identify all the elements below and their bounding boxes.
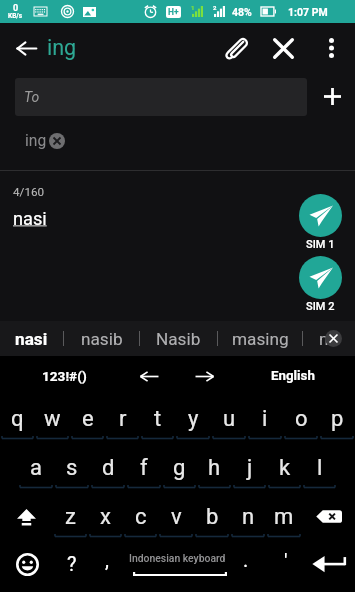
staticText: c [135,504,147,530]
button[interactable]: Remove recipient [49,133,65,149]
staticText: k [279,455,291,481]
button[interactable]: h [197,445,232,494]
staticText: ing [47,35,77,60]
button[interactable]: o [283,396,319,445]
staticText: s [66,455,78,481]
staticText: o [295,406,308,432]
button[interactable]: v [158,494,194,543]
staticText: mi [319,329,339,349]
staticText: nasi [15,329,48,349]
button[interactable]: e [70,396,105,445]
button[interactable]: More options [311,25,351,71]
button[interactable]: Enter [306,543,351,592]
staticText: h [208,455,221,481]
staticText: Indonesian keyboard [129,552,226,564]
staticText: d [102,455,115,481]
staticText: 0 [13,3,19,14]
staticText: nasi [13,208,47,229]
button[interactable]: u [211,396,247,445]
button[interactable]: i [247,396,283,445]
button[interactable]: z [53,494,88,543]
button[interactable]: mi [303,321,354,356]
button[interactable]: Emoji [6,543,49,592]
staticText: SIM 1 [306,238,335,251]
button[interactable]: English [257,356,329,396]
button[interactable]: Hide suggestions [325,330,342,347]
button[interactable]: y [175,396,211,445]
button[interactable]: s [54,445,90,494]
button[interactable]: j [232,445,267,494]
button[interactable]: , [88,543,125,592]
button[interactable]: n [230,494,266,543]
staticText: ' [284,549,288,572]
staticText: 1:07 PM [288,6,328,18]
staticText: w [44,406,61,432]
staticText: 48% [232,6,252,18]
button[interactable]: ? [53,543,90,592]
staticText: m [274,504,294,530]
button[interactable]: g [162,445,197,494]
button[interactable]: Shift [0,494,53,543]
staticText: l [317,455,323,481]
button[interactable]: r [105,396,140,445]
staticText: H+ [168,7,179,17]
button[interactable]: k [267,445,302,494]
staticText: To [24,89,40,105]
button[interactable]: Back [6,28,46,68]
button[interactable]: m [266,494,302,543]
staticText: Nasib [156,329,201,349]
staticText: nasib [81,329,123,349]
staticText: v [171,504,182,530]
staticText: a [30,455,42,481]
staticText: j [247,455,253,481]
button[interactable]: Add recipient [311,78,353,115]
button[interactable]: To [15,78,307,116]
button[interactable]: 123!#() [28,356,100,396]
button[interactable]: q [0,396,35,445]
staticText: 123!#() [42,368,87,384]
button[interactable]: Backspace [302,494,355,543]
staticText: English [271,368,315,384]
button[interactable]: nasib [64,321,139,356]
staticText: ? [67,552,77,575]
staticText: 1 [191,4,195,11]
staticText: KB/s [8,12,23,20]
button[interactable]: Nasib [140,321,217,356]
button[interactable]: c [123,494,158,543]
button[interactable]: ' [271,543,301,592]
button[interactable]: d [90,445,126,494]
button[interactable]: b [194,494,230,543]
button[interactable]: SIM 2 [298,256,342,313]
staticText: b [206,504,219,530]
staticText: n [242,504,255,530]
button[interactable]: p [319,396,355,445]
button[interactable]: nasi [0,321,63,356]
button[interactable]: x [88,494,123,543]
staticText: x [100,504,111,530]
button[interactable]: l [302,445,337,494]
button[interactable]: t [140,396,175,445]
button[interactable]: Attach file [214,25,258,71]
staticText: . [243,548,249,571]
button[interactable]: Space [125,543,237,592]
button[interactable]: SIM 1 [298,194,342,251]
staticText: ing [25,132,47,150]
staticText: u [223,406,236,432]
staticText: r [119,406,127,432]
staticText: , [105,548,109,571]
button[interactable]: . [231,543,261,592]
button[interactable]: f [126,445,162,494]
staticText: g [173,455,186,481]
button[interactable]: w [35,396,70,445]
button[interactable]: a [18,445,54,494]
staticText: 2 [213,4,217,11]
button[interactable]: Cursor left [122,356,177,396]
staticText: e [82,406,94,432]
staticText: p [331,406,344,432]
button[interactable]: masing [218,321,302,356]
staticText: 4/160 [13,185,45,199]
button[interactable]: Cursor right [177,356,232,396]
button[interactable]: Close [261,25,305,71]
staticText: masing [232,329,289,349]
staticText: y [188,406,199,432]
